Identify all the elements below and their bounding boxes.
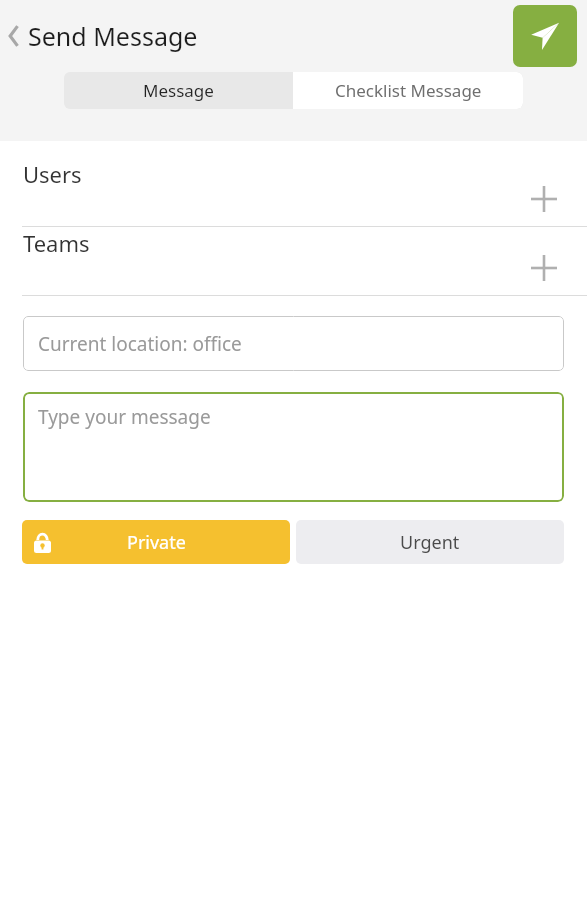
staticText: Checklist Message xyxy=(335,79,482,102)
button[interactable]: Send Message xyxy=(6,19,198,53)
staticText: Current location: office xyxy=(38,331,242,357)
button[interactable]: Send xyxy=(513,5,577,67)
button[interactable]: Users xyxy=(0,158,587,226)
staticText: Type your message xyxy=(38,404,211,430)
button[interactable]: Checklist Message xyxy=(293,72,523,109)
button[interactable]: Current location: office xyxy=(23,316,564,371)
staticText: Urgent xyxy=(400,530,460,555)
staticText: Private xyxy=(127,530,186,555)
button[interactable]: Teams xyxy=(0,227,587,295)
staticText: Send Message xyxy=(28,19,198,53)
staticText: Teams xyxy=(23,228,90,258)
staticText: Message xyxy=(143,79,214,102)
button[interactable]: Urgent xyxy=(296,520,564,564)
button[interactable]: Type your message xyxy=(23,392,564,502)
staticText: Users xyxy=(23,159,82,189)
button[interactable]: Message xyxy=(64,72,293,109)
button[interactable]: Private xyxy=(22,520,290,564)
